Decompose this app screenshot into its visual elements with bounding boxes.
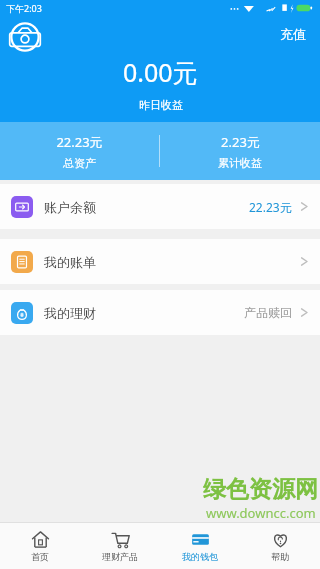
staticText: 昨日收益 (139, 98, 183, 112)
staticText: 我的账单 (44, 254, 96, 270)
staticText: 22.23元 (56, 133, 103, 151)
staticText: 账户余额 (44, 199, 96, 215)
staticText: 理财产品 (102, 551, 138, 562)
button[interactable]: 我的理财 (0, 290, 320, 335)
button[interactable]: 充值 (272, 22, 314, 46)
staticText: 累计收益 (218, 156, 262, 170)
button[interactable]: 我的钱包 (160, 522, 240, 569)
staticText: www.downcc.com (206, 504, 316, 522)
staticText: 帮助 (271, 551, 289, 562)
button[interactable]: 理财产品 (80, 522, 160, 569)
staticText: 我的理财 (44, 305, 96, 321)
staticText: 绿色资源网 (203, 475, 318, 504)
staticText: 产品赎回 (244, 305, 292, 320)
staticText: 首页 (31, 551, 49, 562)
button[interactable]: 22.23元 (0, 133, 159, 170)
button[interactable]: 2.23元 (160, 133, 320, 170)
button[interactable]: 账户余额 (0, 184, 320, 229)
staticText: 2.23元 (221, 133, 260, 151)
staticText: 总资产 (63, 156, 96, 170)
staticText: 充值 (280, 26, 306, 42)
staticText: 下午2:03 (6, 2, 42, 14)
button[interactable]: 首页 (0, 522, 80, 569)
staticText: 0.00元 (123, 55, 198, 89)
button[interactable]: 我的账单 (0, 239, 320, 284)
staticText: 22.23元 (249, 199, 292, 215)
button[interactable]: Scan (8, 20, 42, 54)
staticText: 我的钱包 (182, 551, 218, 562)
button[interactable]: 帮助 (240, 522, 320, 569)
